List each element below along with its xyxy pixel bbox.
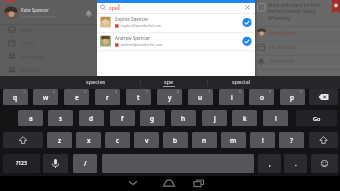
- button[interactable]: i: [219, 89, 244, 105]
- staticText: f: [121, 114, 124, 123]
- button[interactable]: ,: [258, 154, 281, 173]
- button[interactable]: p: [280, 89, 305, 105]
- button[interactable]: Go: [296, 110, 337, 126]
- staticText: spe: [109, 4, 119, 11]
- staticText: Inbox: [21, 27, 34, 33]
- button[interactable]: [309, 89, 338, 105]
- button[interactable]: x: [76, 132, 101, 148]
- staticText: 4: [115, 89, 118, 94]
- staticText: #Planning: [268, 15, 291, 21]
- staticText: 3: [84, 89, 87, 94]
- staticText: e: [75, 93, 79, 102]
- staticText: g: [150, 114, 155, 123]
- staticText: ?: [290, 136, 293, 145]
- staticText: b: [173, 136, 178, 145]
- button[interactable]: /: [73, 154, 97, 173]
- staticText: r: [106, 93, 109, 102]
- button[interactable]: u: [188, 89, 213, 105]
- button[interactable]: v: [134, 132, 159, 148]
- staticText: 7: [208, 89, 211, 94]
- button[interactable]: h: [171, 110, 196, 126]
- button[interactable]: f: [110, 110, 135, 126]
- button[interactable]: m: [221, 132, 246, 148]
- staticText: Kate Spencer: [269, 30, 298, 36]
- staticText: Kate Spencer: [21, 7, 49, 13]
- staticText: special: [232, 78, 250, 86]
- staticText: !: [262, 136, 264, 145]
- staticText: z: [58, 136, 62, 145]
- staticText: n: [202, 136, 207, 145]
- staticText: l: [275, 114, 277, 123]
- button[interactable]: Andrew Spencer: [97, 33, 255, 51]
- button[interactable]: [309, 132, 338, 148]
- staticText: 8: [239, 89, 242, 94]
- staticText: y: [168, 93, 172, 102]
- button[interactable]: w: [33, 89, 58, 105]
- button[interactable]: [118, 176, 148, 191]
- button[interactable]: a: [18, 110, 43, 126]
- button[interactable]: [43, 154, 68, 173]
- staticText: j: [214, 114, 216, 123]
- button[interactable]: s: [48, 110, 73, 126]
- button[interactable]: ?: [279, 132, 304, 148]
- staticText: v: [145, 136, 149, 145]
- button[interactable]: [154, 176, 184, 191]
- staticText: m: [230, 136, 237, 145]
- staticText: p: [290, 93, 295, 102]
- button[interactable]: [3, 132, 43, 148]
- staticText: 9: [269, 89, 272, 94]
- button[interactable]: t: [126, 89, 151, 105]
- staticText: 5: [146, 89, 149, 94]
- staticText: /: [84, 159, 87, 168]
- button[interactable]: j: [202, 110, 227, 126]
- staticText: Set due date: [269, 44, 297, 50]
- button[interactable]: !: [250, 132, 275, 148]
- staticText: spe: [164, 78, 174, 86]
- button[interactable]: l: [263, 110, 288, 126]
- staticText: Remind me: [269, 58, 294, 64]
- staticText: c: [116, 136, 120, 145]
- button[interactable]: .: [284, 154, 307, 173]
- button[interactable]: r: [95, 89, 120, 105]
- button[interactable]: c: [105, 132, 130, 148]
- staticText: Andrew Spencer: [115, 35, 151, 41]
- staticText: kitchen interior layout: [268, 8, 316, 14]
- button[interactable]: [311, 154, 338, 173]
- staticText: t: [137, 93, 140, 102]
- staticText: kate@wonderful.com: [21, 14, 58, 19]
- staticText: i: [231, 93, 233, 102]
- staticText: 1: [23, 89, 26, 94]
- staticText: q: [13, 93, 18, 102]
- staticText: h: [181, 114, 186, 123]
- staticText: Groceries: [21, 67, 42, 73]
- button[interactable]: e: [64, 89, 89, 105]
- staticText: Work with client on final: [268, 2, 321, 8]
- staticText: s: [59, 114, 63, 123]
- button[interactable]: k: [232, 110, 257, 126]
- button[interactable]: Groceries: [0, 66, 97, 79]
- staticText: x: [87, 136, 91, 145]
- button[interactable]: z: [47, 132, 72, 148]
- button[interactable]: o: [249, 89, 274, 105]
- staticText: sophie@wonderful.com: [121, 23, 162, 28]
- button[interactable]: n: [192, 132, 217, 148]
- button[interactable]: d: [79, 110, 104, 126]
- staticText: .: [295, 159, 297, 168]
- button[interactable]: g: [140, 110, 165, 126]
- button[interactable]: y: [157, 89, 182, 105]
- staticText: d: [89, 114, 94, 123]
- staticText: species: [86, 78, 106, 86]
- button[interactable]: Sophie Spencer: [97, 14, 255, 32]
- button[interactable]: q: [3, 89, 28, 105]
- staticText: Go: [313, 115, 321, 122]
- staticText: w: [43, 93, 49, 102]
- staticText: Our Home: [21, 54, 44, 60]
- button[interactable]: b: [163, 132, 188, 148]
- button[interactable]: ?123: [3, 154, 40, 173]
- button[interactable]: [184, 176, 214, 191]
- staticText: u: [198, 93, 203, 102]
